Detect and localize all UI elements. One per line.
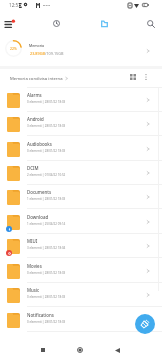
- button[interactable]: Audiobooks: [0, 137, 162, 161]
- staticText: /109.15GB: [45, 51, 64, 56]
- staticText: 3 elementi | 28/01/22 18:03: [27, 124, 66, 128]
- button[interactable]: Grid view: [125, 69, 141, 85]
- staticText: Download: [27, 214, 49, 220]
- button[interactable]: Memoria condivisa interna: [10, 69, 69, 88]
- button[interactable]: 22%: [0, 36, 162, 65]
- button[interactable]: Menu: [0, 15, 19, 34]
- staticText: 3 elementi | 28/01/22 18:04: [27, 246, 66, 250]
- button[interactable]: Movies: [0, 259, 162, 283]
- staticText: 1 elementi | 25/04/22 09:14: [27, 222, 66, 226]
- staticText: DCIM: [27, 165, 39, 171]
- button[interactable]: Download: [0, 210, 162, 234]
- button[interactable]: Notifications: [0, 308, 162, 332]
- button[interactable]: DCIM: [0, 161, 162, 185]
- staticText: 22%: [10, 46, 17, 51]
- staticText: 0 elementi | 28/01/22 18:03: [27, 295, 66, 299]
- button[interactable]: Clean up storage: [135, 314, 155, 334]
- button[interactable]: Documents: [0, 185, 162, 209]
- staticText: 0 elementi | 28/01/22 18:03: [27, 271, 66, 275]
- staticText: 0 elementi | 28/01/22 18:03: [27, 100, 66, 104]
- staticText: Memoria condivisa interna: [10, 76, 63, 82]
- button[interactable]: Home: [69, 339, 91, 360]
- button[interactable]: More options: [138, 69, 154, 85]
- staticText: Alarms: [27, 92, 42, 98]
- staticText: Audiobooks: [27, 141, 52, 147]
- button[interactable]: Music: [0, 283, 162, 307]
- staticText: Music: [27, 287, 40, 293]
- button[interactable]: Android: [0, 112, 162, 136]
- staticText: 12:57: [9, 2, 21, 8]
- button[interactable]: Search: [141, 14, 160, 33]
- button[interactable]: Back: [106, 339, 128, 360]
- staticText: 1 elementi | 28/01/22 18:03: [27, 197, 66, 201]
- staticText: Memoria: [29, 43, 45, 48]
- staticText: 23.89GB: [30, 51, 45, 56]
- staticText: Android: [27, 116, 44, 122]
- button[interactable]: Recents: [32, 339, 54, 360]
- staticText: MIUI: [27, 238, 38, 244]
- staticText: 0 elementi | 28/01/22 18:03: [27, 320, 66, 324]
- button[interactable]: Alarms: [0, 88, 162, 112]
- staticText: 2 elementi | 01/04/22 10:52: [27, 173, 66, 177]
- button[interactable]: MIUI: [0, 234, 162, 258]
- staticText: Notifications: [27, 312, 54, 318]
- button[interactable]: Categories: [95, 14, 114, 33]
- staticText: Movies: [27, 263, 42, 269]
- button[interactable]: Recent files: [47, 14, 66, 33]
- staticText: Documents: [27, 189, 52, 195]
- staticText: 0 elementi | 28/01/22 18:03: [27, 149, 66, 153]
